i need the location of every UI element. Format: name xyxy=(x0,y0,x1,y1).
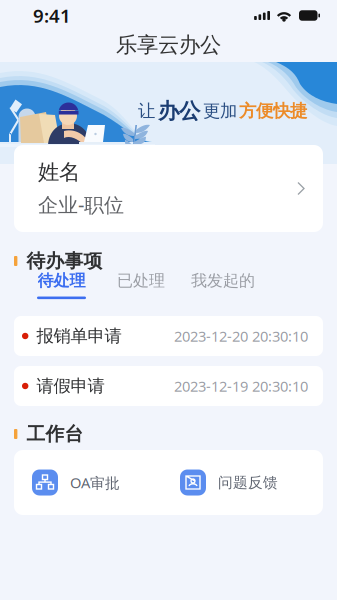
button[interactable]: 报销单申请 xyxy=(14,316,323,356)
staticText: 我发起的 xyxy=(191,271,255,291)
staticText: 已处理 xyxy=(117,271,165,291)
staticText: 办公 xyxy=(158,98,200,124)
staticText: 请假申请 xyxy=(36,375,104,397)
staticText: 更加 xyxy=(203,100,237,122)
staticText: 2023-12-20 20:30:10 xyxy=(174,326,308,346)
button[interactable]: 问题反馈 xyxy=(180,469,310,495)
button[interactable]: 已处理 xyxy=(100,272,182,302)
button[interactable]: 请假申请 xyxy=(14,366,323,406)
button[interactable]: 我发起的 xyxy=(182,272,264,302)
staticText: 工作台 xyxy=(26,422,83,445)
staticText: 姓名 xyxy=(38,159,80,185)
staticText: 让 xyxy=(138,100,155,122)
staticText: 乐享云办公 xyxy=(116,32,221,58)
staticText: 方便快捷 xyxy=(239,100,307,122)
staticText: 报销单申请 xyxy=(36,325,121,347)
staticText: OA审批 xyxy=(70,473,120,492)
staticText: 待处理 xyxy=(37,271,85,291)
button[interactable]: 姓名 xyxy=(14,145,323,232)
button[interactable]: OA审批 xyxy=(32,469,180,495)
staticText: 2023-12-19 20:30:10 xyxy=(174,376,308,396)
staticText: 待办事项 xyxy=(26,249,102,272)
button[interactable]: 待处理 xyxy=(23,272,100,302)
staticText: 企业-职位 xyxy=(38,191,124,218)
staticText: 9:41 xyxy=(33,3,71,28)
staticText: 问题反馈 xyxy=(218,473,278,491)
